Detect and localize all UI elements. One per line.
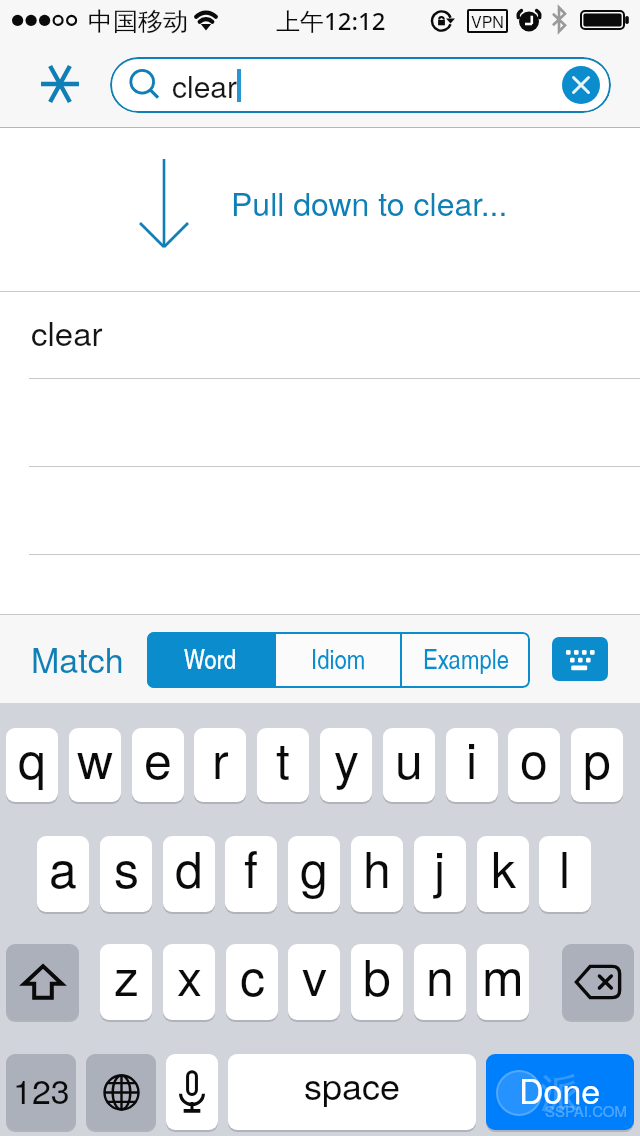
staticText: SSPAI.COM [545,1100,628,1121]
staticText: w [77,728,114,794]
button[interactable]: f [225,836,277,912]
button[interactable]: h [351,836,403,912]
staticText: b [363,944,391,1011]
staticText: e [144,728,172,794]
staticText: Match [31,634,124,683]
button[interactable]: s [100,836,152,912]
button[interactable]: i [446,728,498,802]
staticText: VPN [471,10,504,33]
staticText: space [304,1059,401,1111]
staticText: q [18,728,46,794]
staticText: Idiom [311,640,366,677]
button[interactable]: q [6,728,58,802]
staticText: k [491,836,516,903]
button[interactable]: e [132,728,184,802]
staticText: g [300,836,328,903]
staticText: j [434,836,446,903]
staticText: x [177,944,202,1011]
button[interactable]: d [163,836,215,912]
button[interactable]: Word [147,632,274,688]
button[interactable]: c [226,944,278,1020]
staticText: o [520,728,548,794]
button[interactable]: clear [110,57,611,113]
staticText: u [395,728,423,794]
button[interactable]: Done [486,1054,634,1130]
staticText: Done [519,1065,601,1114]
staticText: i [466,728,478,794]
button[interactable]: t [257,728,309,802]
staticText: d [175,836,203,903]
button[interactable]: a [37,836,89,912]
button[interactable]: space [228,1054,476,1130]
staticText: clear [172,64,238,107]
staticText: h [363,836,391,903]
staticText: a [49,836,77,903]
staticText: m [482,944,524,1011]
staticText: Pull down to clear... [231,179,508,225]
button[interactable]: Change keyboard [86,1054,156,1130]
button[interactable]: Shift [6,944,79,1020]
staticText: c [240,944,265,1011]
staticText: Word [184,640,237,677]
staticText: 123 [13,1065,70,1114]
button[interactable]: Dictation [166,1054,218,1130]
button[interactable]: Example [402,632,530,688]
staticText: t [276,728,290,794]
button[interactable]: j [414,836,466,912]
button[interactable]: n [414,944,466,1020]
button[interactable]: x [163,944,215,1020]
button[interactable]: Menu [30,54,90,114]
button[interactable]: Clear text [562,66,600,104]
button[interactable]: Backspace [562,944,634,1020]
button[interactable]: z [100,944,152,1020]
button[interactable]: 123 [6,1054,76,1130]
staticText: 上午12:12 [276,4,386,37]
staticText: y [334,728,359,794]
button[interactable]: o [508,728,560,802]
button[interactable]: l [539,836,591,912]
button[interactable]: k [477,836,529,912]
button[interactable]: y [320,728,372,802]
staticText: 中国移动 [88,6,188,37]
button[interactable]: r [194,728,246,802]
staticText: l [559,836,571,903]
button[interactable]: v [288,944,340,1020]
button[interactable]: b [351,944,403,1020]
staticText: r [212,728,229,794]
button[interactable]: Show keyboard [552,637,608,681]
button[interactable]: m [477,944,529,1020]
button[interactable]: w [69,728,121,802]
button[interactable]: clear [0,292,640,378]
staticText: f [244,836,258,903]
staticText: Example [423,640,509,677]
staticText: v [302,944,327,1011]
staticText: n [426,944,454,1011]
button[interactable]: p [571,728,623,802]
button[interactable]: u [383,728,435,802]
staticText: 派 [540,1068,580,1118]
staticText: s [114,836,139,903]
button[interactable]: g [288,836,340,912]
button[interactable]: Idiom [276,632,400,688]
staticText: p [583,728,611,794]
staticText: clear [31,308,103,355]
staticText: z [114,944,139,1011]
